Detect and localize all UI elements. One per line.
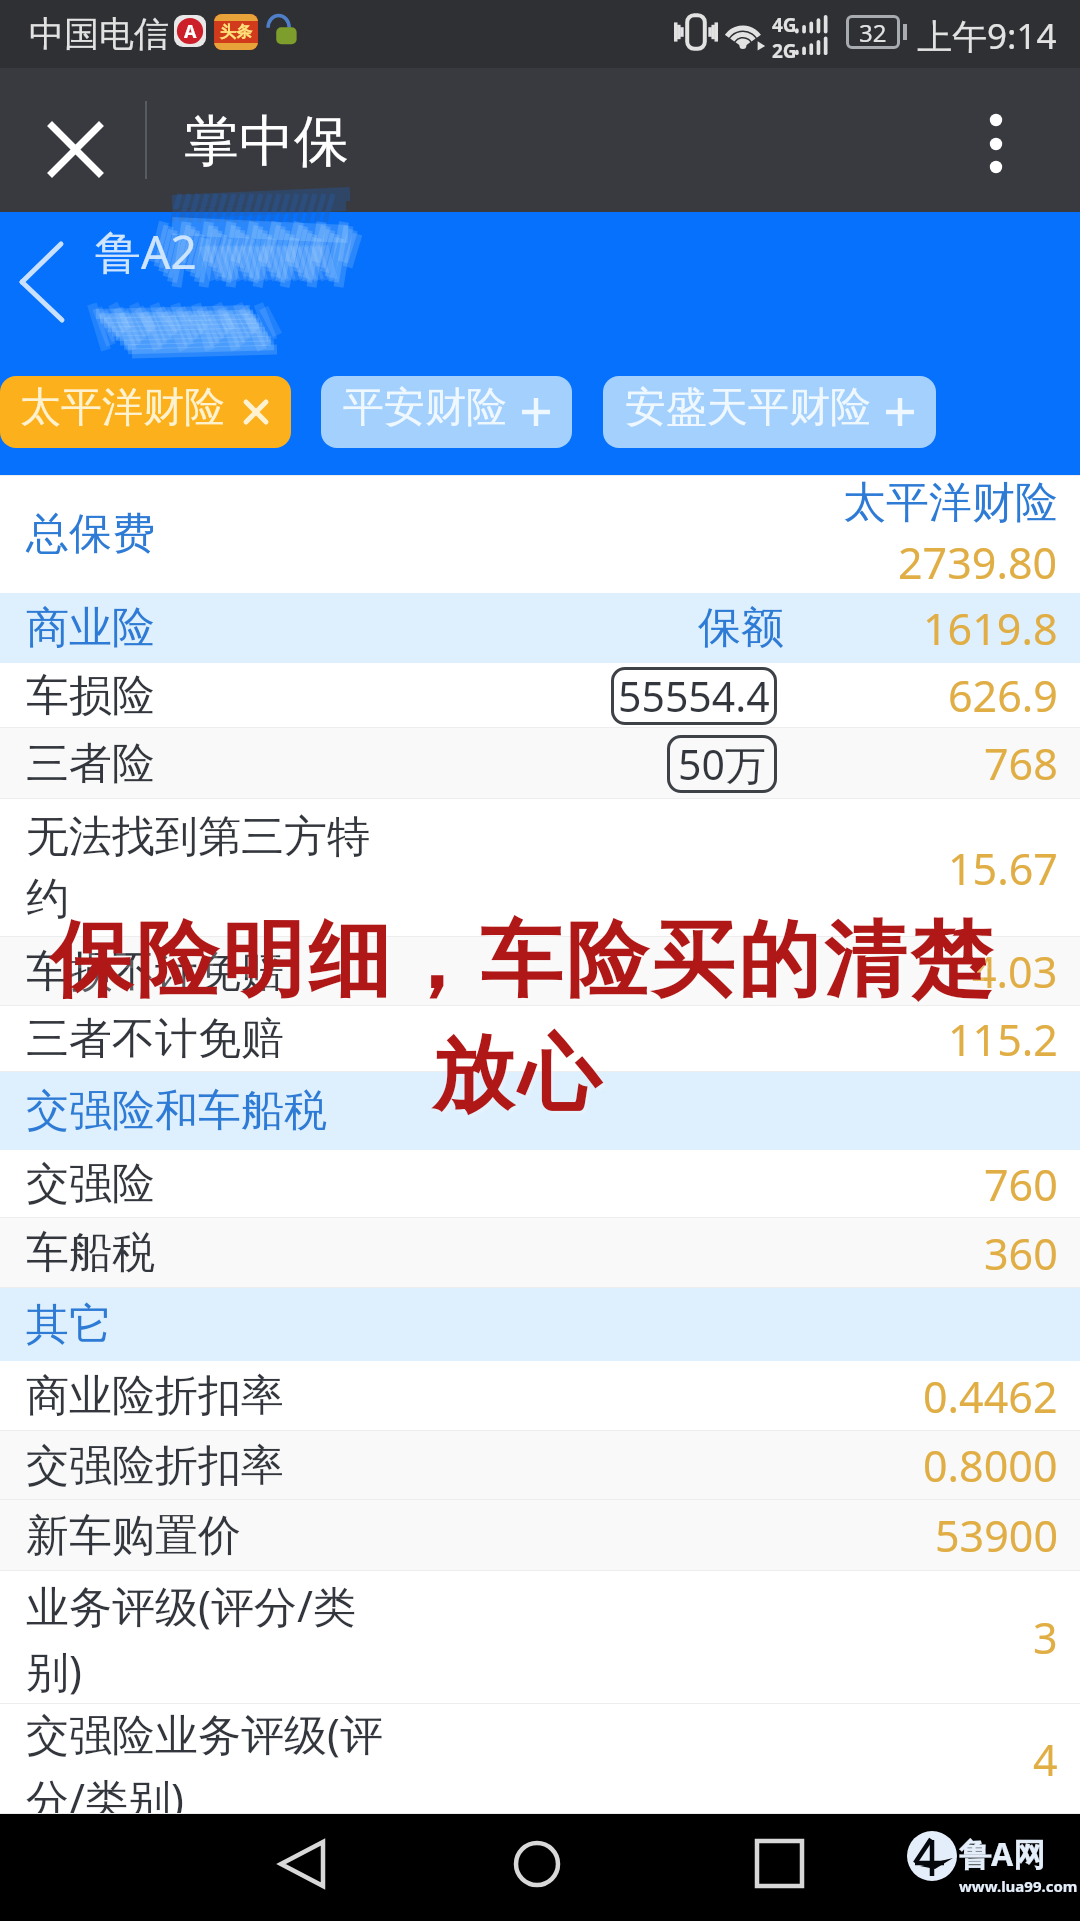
staticText: 鲁A2 <box>95 220 197 283</box>
button[interactable]: 三者不计免赔 <box>0 1006 1080 1072</box>
staticText: 53900 <box>935 1506 1058 1565</box>
button[interactable]: 交强险业务评级(评 分/类别) <box>0 1704 1080 1814</box>
button[interactable]: 三者险 <box>0 728 1080 799</box>
staticText: 32 <box>859 16 887 49</box>
staticText: 掌中保 <box>184 107 349 176</box>
staticText: 太平洋财险 <box>20 382 225 434</box>
staticText: 车损不计免赔 <box>26 945 284 999</box>
staticText: 总保费 <box>26 507 155 561</box>
staticText: 中国电信 <box>29 12 169 56</box>
staticText: A <box>184 19 197 44</box>
staticText: 0.4462 <box>923 1367 1058 1426</box>
button[interactable]: Back <box>10 232 80 352</box>
staticText: 业务评级(评分/类 别) <box>26 1576 356 1699</box>
button[interactable]: 商业险折扣率 <box>0 1361 1080 1431</box>
button[interactable]: 车损不计免赔 <box>0 937 1080 1006</box>
button[interactable]: Home <box>513 1840 561 1888</box>
button[interactable]: 新车购置价 <box>0 1500 1080 1571</box>
button[interactable]: Close <box>33 107 112 186</box>
staticText: 放心 <box>433 1026 605 1129</box>
staticText: 安盛天平财险 <box>625 382 871 434</box>
button[interactable]: 总保费 <box>0 475 1080 593</box>
staticText: 车损险 <box>26 669 155 723</box>
staticText: 商业险 <box>26 601 155 655</box>
staticText: 平安财险 <box>343 382 507 434</box>
staticText: 50万 <box>678 736 766 792</box>
button[interactable]: 安盛天平财险 <box>603 376 936 448</box>
staticText: 2739.80 <box>898 533 1058 592</box>
staticText: 768 <box>984 734 1058 793</box>
staticText: 头条 <box>220 22 252 42</box>
staticText: 保额 <box>698 601 784 655</box>
button[interactable]: 车损险 <box>0 663 1080 728</box>
staticText: 4G <box>772 12 797 38</box>
staticText: 4 <box>1033 1730 1058 1789</box>
staticText: 760 <box>984 1155 1058 1214</box>
button[interactable]: 平安财险 <box>321 376 572 448</box>
staticText: 626.9 <box>948 666 1058 725</box>
button[interactable]: More options <box>970 114 1022 166</box>
staticText: 1619.8 <box>923 599 1058 658</box>
staticText: 新车购置价 <box>26 1509 241 1563</box>
staticText: www.lua99.com <box>959 1876 1078 1896</box>
staticText: 太平洋财险 <box>843 476 1058 530</box>
staticText: 商业险折扣率 <box>26 1369 284 1423</box>
staticText: 15.67 <box>948 839 1058 898</box>
staticText: 三者不计免赔 <box>26 1012 284 1066</box>
staticText: 三者险 <box>26 737 155 791</box>
staticText: 交强险 <box>26 1157 155 1211</box>
button[interactable]: 其它 <box>0 1288 1080 1361</box>
staticText: 车船税 <box>26 1226 155 1280</box>
staticText: 鲁A网 <box>959 1832 1046 1876</box>
button[interactable]: Back <box>279 1840 323 1888</box>
staticText: 交强险和车船税 <box>26 1084 327 1138</box>
staticText: 4.03 <box>972 942 1058 1001</box>
staticText: 2G <box>772 38 797 64</box>
staticText: 交强险折扣率 <box>26 1439 284 1493</box>
staticText: 交强险业务评级(评 分/类别) <box>26 1704 383 1814</box>
staticText: 其它 <box>26 1298 112 1352</box>
button[interactable]: 太平洋财险 <box>0 376 291 448</box>
button[interactable]: 商业险 <box>0 593 1080 663</box>
staticText: 55554.4 <box>618 668 770 724</box>
button[interactable]: Recents <box>757 1841 802 1886</box>
button[interactable]: 无法找到第三方特 约 <box>0 799 1080 937</box>
staticText: 3 <box>1033 1608 1058 1667</box>
staticText: 无法找到第三方特 约 <box>26 810 370 926</box>
button[interactable]: 交强险折扣率 <box>0 1431 1080 1500</box>
staticText: 115.2 <box>948 1010 1058 1069</box>
staticText: 保险明细，车险买的清楚 <box>48 909 994 1012</box>
staticText: 0.8000 <box>923 1436 1058 1495</box>
button[interactable]: 业务评级(评分/类 别) <box>0 1571 1080 1704</box>
staticText: 放心 <box>430 1023 602 1126</box>
button[interactable]: 交强险 <box>0 1150 1080 1218</box>
button[interactable]: 车船税 <box>0 1218 1080 1288</box>
staticText: 上午9:14 <box>917 12 1057 60</box>
staticText: 保险明细，车险买的清楚 <box>51 912 997 1015</box>
staticText: 360 <box>984 1224 1058 1283</box>
button[interactable]: 交强险和车船税 <box>0 1072 1080 1150</box>
